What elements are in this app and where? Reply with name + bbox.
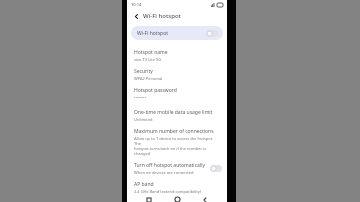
- staticText: Turn off hotspot automatically: [134, 162, 205, 169]
- button[interactable]: Hotspot password: [127, 84, 227, 103]
- button[interactable]: Recents: [143, 197, 155, 202]
- button[interactable]: Hotspot name: [127, 46, 227, 65]
- staticText: Maximum number of connections: [134, 128, 214, 135]
- staticText: When no devices are connected: [134, 170, 194, 175]
- staticText: Wi-Fi hotspot: [137, 30, 168, 37]
- staticText: 2.4 GHz Band (extend compatibility): [134, 189, 201, 194]
- button[interactable]: Turn off hotspot automatically: [127, 159, 227, 178]
- staticText: One-time mobile data usage limit: [134, 109, 213, 116]
- button[interactable]: Back: [131, 11, 141, 21]
- button[interactable]: Maximum number of connections: [127, 125, 227, 159]
- staticText: Wi-Fi hotspot: [143, 12, 181, 20]
- staticText: Hotspot password: [134, 87, 177, 94]
- button[interactable]: Back: [199, 197, 211, 202]
- staticText: AP band: [134, 181, 154, 188]
- button[interactable]: Wi-Fi hotspot: [131, 26, 223, 40]
- staticText: WPA2 Personal: [134, 76, 163, 81]
- staticText: vivo T3 Lite 5G: [134, 57, 162, 62]
- button[interactable]: AP band: [127, 178, 227, 197]
- staticText: 10:14: [131, 2, 142, 7]
- staticText: Unlimited: [134, 117, 153, 122]
- staticText: Hotspot name: [134, 49, 168, 56]
- staticText: Security: [134, 68, 153, 75]
- staticText: ••••••••: [134, 95, 147, 100]
- button[interactable]: Security: [127, 65, 227, 84]
- button[interactable]: One-time mobile data usage limit: [127, 106, 227, 125]
- button[interactable]: Home: [171, 197, 183, 202]
- staticText: Allow up to 1 device to access the hotsp…: [134, 136, 220, 156]
